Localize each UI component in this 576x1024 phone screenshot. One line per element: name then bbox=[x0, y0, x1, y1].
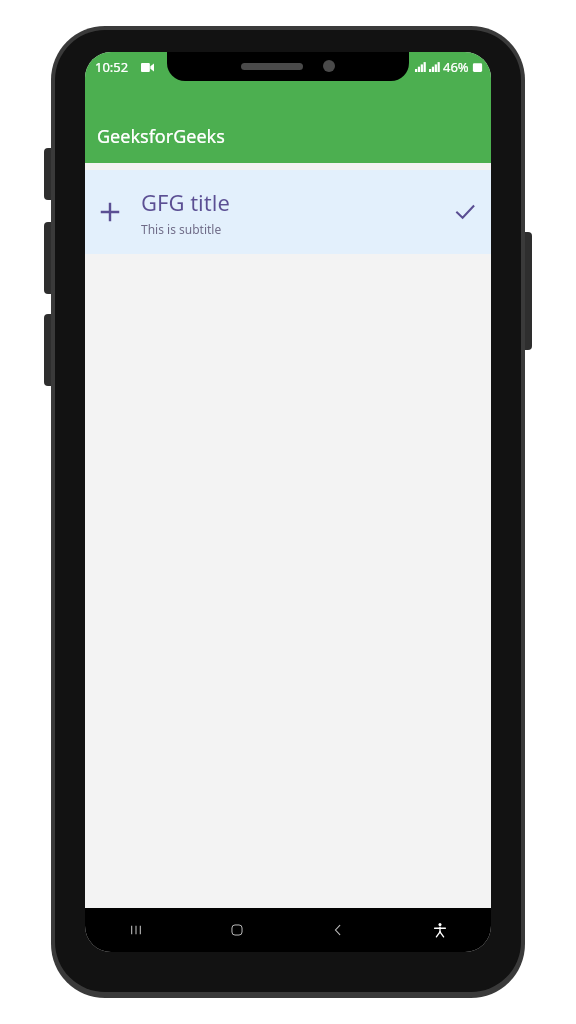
other: Done bbox=[453, 200, 477, 224]
button[interactable]: Recents bbox=[85, 908, 186, 952]
staticText: 10:52 bbox=[95, 58, 129, 76]
button[interactable]: Home bbox=[186, 908, 287, 952]
staticText: This is subtitle bbox=[141, 221, 222, 237]
staticText: 46% bbox=[443, 58, 469, 76]
button[interactable]: Accessibility bbox=[389, 908, 491, 952]
staticText: GeeksforGeeks bbox=[97, 124, 225, 149]
other: Add bbox=[99, 201, 121, 223]
button[interactable]: Back bbox=[287, 908, 389, 952]
staticText: GFG title bbox=[141, 187, 230, 217]
button[interactable]: Add bbox=[85, 170, 491, 254]
